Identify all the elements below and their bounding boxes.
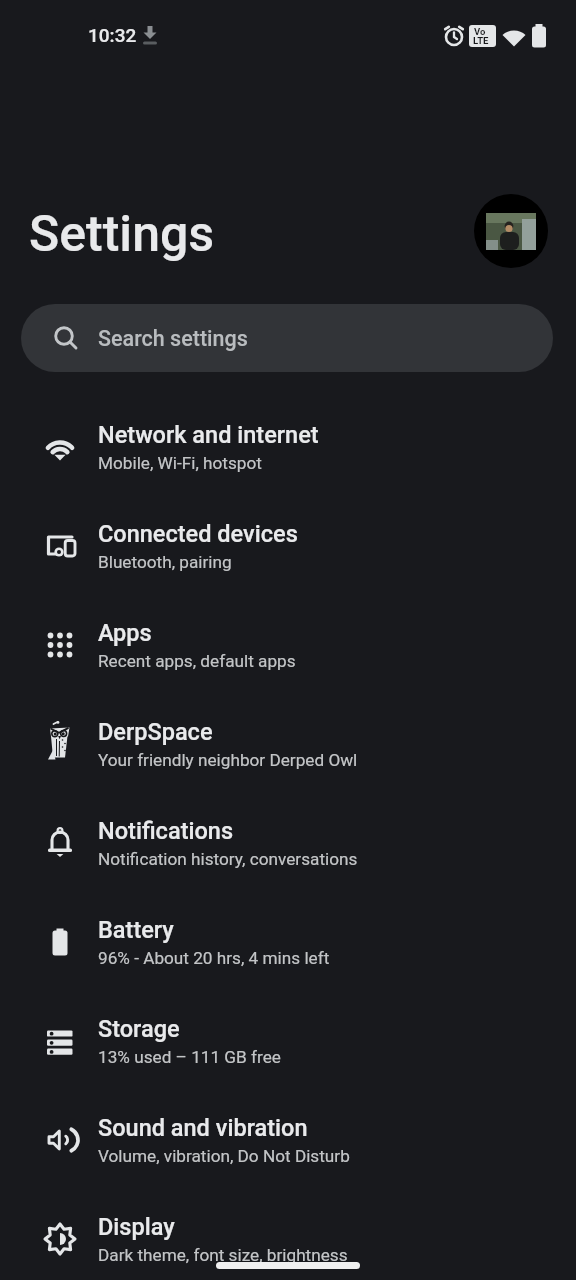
button[interactable]: Search settings — [21, 304, 553, 372]
staticText: Settings — [29, 205, 215, 264]
staticText: Notification history, conversations — [98, 849, 358, 869]
staticText: Notifications — [98, 817, 234, 845]
button[interactable]: Apps — [0, 595, 576, 694]
staticText: Display — [98, 1213, 175, 1241]
staticText: Storage — [98, 1015, 180, 1043]
staticText: 10:32 — [88, 24, 137, 46]
button[interactable]: Notifications — [0, 793, 576, 892]
button[interactable]: DerpSpace — [0, 694, 576, 793]
staticText: Mobile, Wi-Fi, hotspot — [98, 453, 262, 473]
button[interactable]: Network and internet — [0, 397, 576, 496]
staticText: Bluetooth, pairing — [98, 552, 232, 572]
staticText: Recent apps, default apps — [98, 651, 296, 671]
button[interactable]: Display — [0, 1189, 576, 1280]
staticText: Your friendly neighbor Derped Owl — [98, 750, 358, 770]
staticText: Sound and vibration — [98, 1114, 308, 1142]
staticText: Vo — [474, 26, 486, 37]
staticText: 13% used – 111 GB free — [98, 1047, 281, 1067]
staticText: 96% - About 20 hrs, 4 mins left — [98, 948, 330, 968]
staticText: DerpSpace — [98, 718, 213, 746]
button[interactable]: Storage — [0, 991, 576, 1090]
staticText: Volume, vibration, Do Not Disturb — [98, 1146, 350, 1166]
button[interactable]: Battery — [0, 892, 576, 991]
staticText: Apps — [98, 619, 152, 647]
staticText: Search settings — [98, 326, 248, 351]
staticText: Battery — [98, 916, 174, 944]
button[interactable]: Connected devices — [0, 496, 576, 595]
staticText: Dark theme, font size, brightness — [98, 1245, 348, 1265]
staticText: LTE — [473, 35, 489, 46]
button[interactable] — [474, 194, 548, 268]
staticText: Connected devices — [98, 520, 298, 548]
staticText: Network and internet — [98, 421, 319, 449]
button[interactable]: Sound and vibration — [0, 1090, 576, 1189]
